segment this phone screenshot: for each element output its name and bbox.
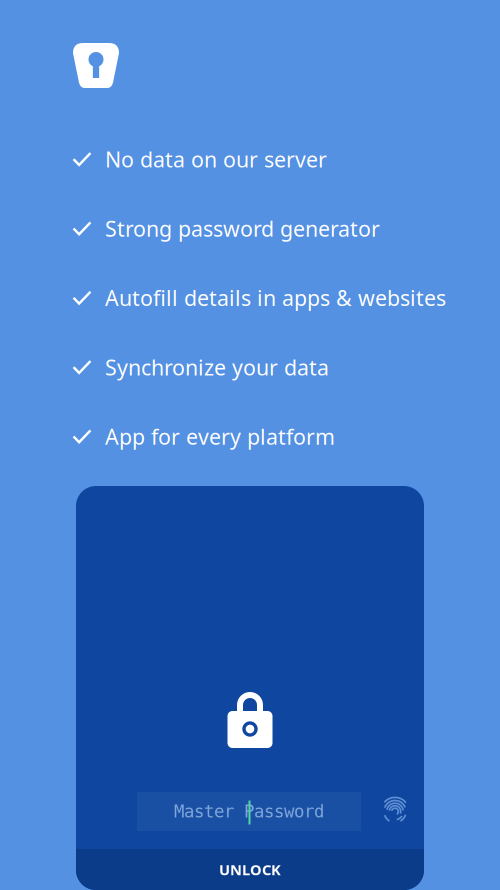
staticText: UNLOCK (219, 860, 281, 879)
staticText: App for every platform (105, 422, 335, 451)
staticText: Synchronize your data (105, 353, 329, 381)
staticText: Strong password generator (105, 214, 380, 243)
staticText: No data on our server (105, 145, 327, 173)
staticText: Master Password (174, 802, 324, 821)
button[interactable]: UNLOCK (76, 849, 424, 890)
staticText: Autofill details in apps & websites (105, 284, 446, 312)
button[interactable]: Unlock with fingerprint (379, 792, 411, 831)
